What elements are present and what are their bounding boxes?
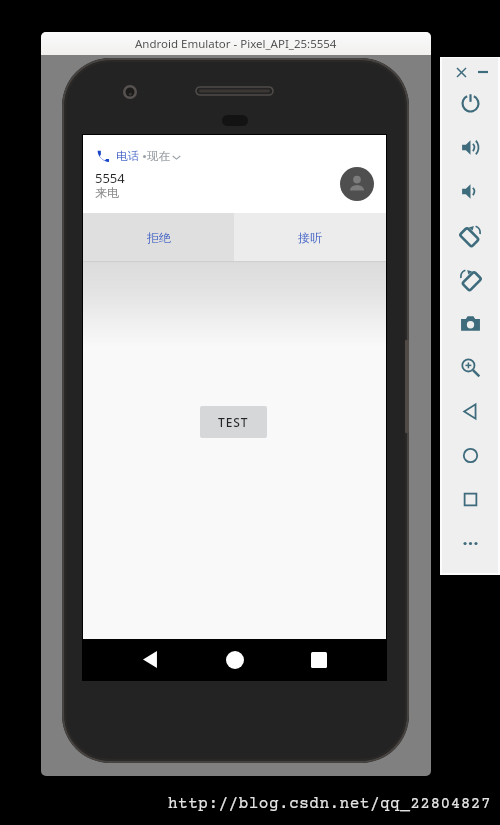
button[interactable]: Rotate right: [442, 257, 498, 301]
button[interactable]: Home: [442, 433, 498, 477]
button[interactable]: Zoom: [442, 345, 498, 389]
button[interactable]: Volume down: [442, 169, 498, 213]
button[interactable]: Recents: [289, 639, 349, 680]
button[interactable]: Back: [442, 389, 498, 433]
staticText: 现在: [147, 149, 170, 163]
staticText: Android Emulator - Pixel_API_25:5554: [135, 36, 337, 52]
staticText: 接听: [298, 230, 322, 245]
staticText: 5554: [95, 169, 125, 187]
button[interactable]: Close: [451, 62, 471, 82]
button[interactable]: Volume up: [442, 125, 498, 169]
staticText: TEST: [218, 414, 249, 430]
button[interactable]: Minimize: [473, 62, 493, 82]
staticText: 拒绝: [147, 230, 171, 245]
button[interactable]: Screenshot: [442, 301, 498, 345]
button[interactable]: More: [442, 521, 498, 565]
button[interactable]: Overview: [442, 477, 498, 521]
staticText: 电话: [116, 149, 139, 163]
button[interactable]: Home: [205, 639, 265, 680]
button[interactable]: 接听: [234, 213, 386, 261]
staticText: http://blog.csdn.net/qq_22804827: [168, 795, 500, 813]
button[interactable]: Power: [442, 81, 498, 125]
button[interactable]: TEST: [200, 406, 267, 438]
button[interactable]: 拒绝: [83, 213, 234, 261]
staticText: 来电: [95, 185, 119, 200]
button[interactable]: Back: [120, 639, 180, 680]
button[interactable]: Rotate left: [442, 213, 498, 257]
